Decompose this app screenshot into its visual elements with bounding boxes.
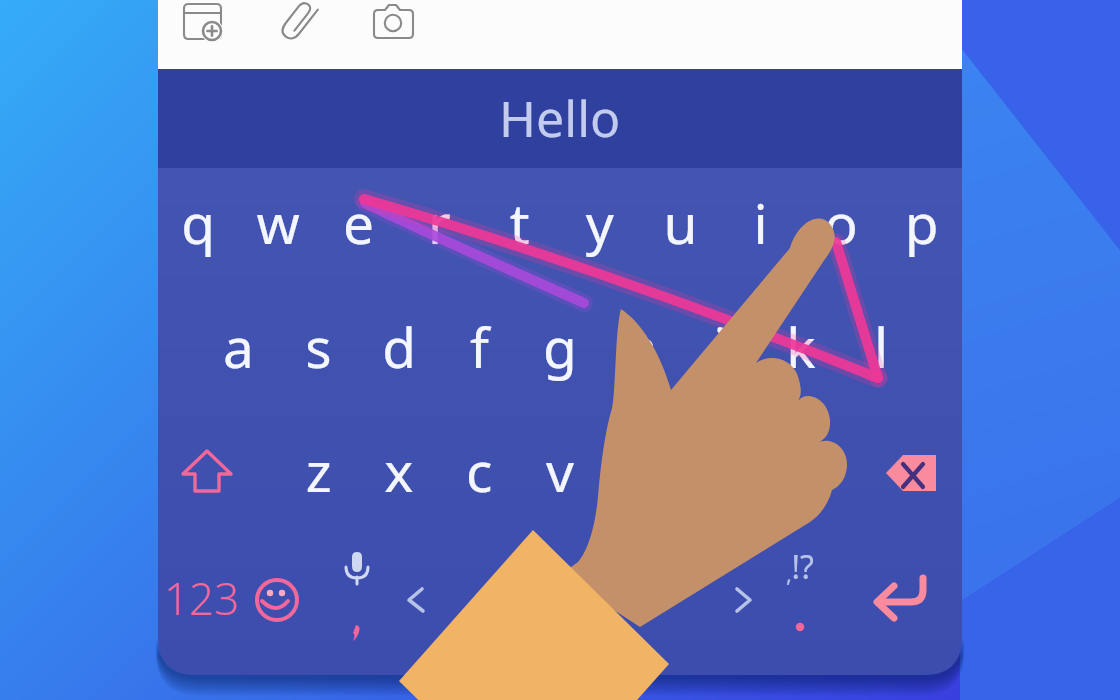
button[interactable]: Swipe keyboard xyxy=(0,0,1120,700)
